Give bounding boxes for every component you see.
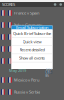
button[interactable]: Show all events xyxy=(11,54,52,62)
staticText: May 2019 xyxy=(9,68,26,73)
staticText: Ireland v Wales xyxy=(14,34,41,40)
staticText: Email Subscription xyxy=(16,25,48,30)
staticText: Show all events xyxy=(19,55,45,61)
button[interactable]: Ireland v Wales xyxy=(0,31,64,43)
button[interactable]: Settings xyxy=(59,3,62,6)
button[interactable]: Italy v Germany xyxy=(0,19,64,31)
button[interactable]: Recent detailed xyxy=(11,46,52,54)
staticText: Mexico v Peru xyxy=(14,77,39,83)
button[interactable]: France v Spain xyxy=(0,7,64,19)
staticText: Quick view xyxy=(22,39,41,44)
staticText: SCORES xyxy=(2,2,15,7)
button[interactable]: Chile v Norway xyxy=(0,55,64,67)
button[interactable]: Search xyxy=(54,3,56,6)
staticText: France v Spain xyxy=(14,10,39,16)
staticText: SUBSCRIBE xyxy=(45,67,52,77)
button[interactable]: Mexico v Peru xyxy=(0,74,64,86)
staticText: Russia v Serbia xyxy=(14,89,40,95)
staticText: Chile v Norway xyxy=(14,58,41,64)
staticText: Recent detailed xyxy=(19,47,44,52)
button[interactable]: England v Japan xyxy=(0,43,64,55)
staticText: Quick Brief Subscribe xyxy=(13,31,51,36)
button[interactable]: Russia v Serbia xyxy=(0,86,64,98)
staticText: England v Japan xyxy=(14,46,40,52)
button[interactable]: Quick view xyxy=(11,38,52,46)
button[interactable]: Quick Brief Subscribe xyxy=(11,29,52,38)
button[interactable]: SUBSCRIBE xyxy=(45,70,52,74)
staticText: Italy v Germany xyxy=(14,22,42,28)
